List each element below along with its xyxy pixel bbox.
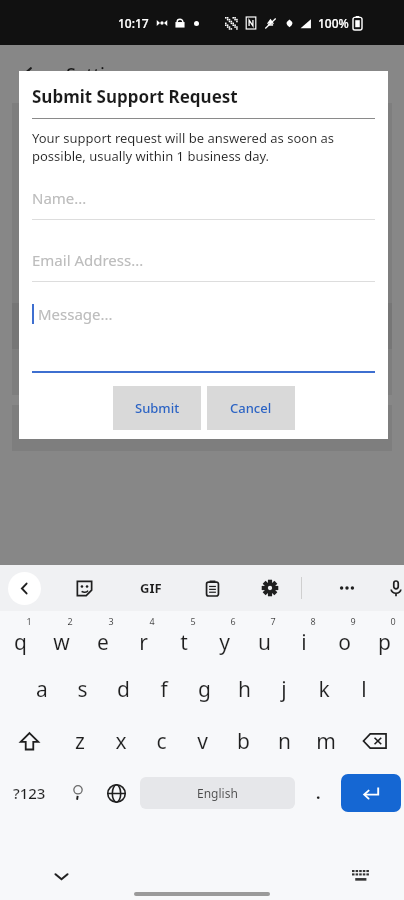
- staticText: 100%: [318, 15, 349, 31]
- staticText: b: [237, 727, 250, 756]
- button[interactable]: s: [62, 663, 103, 715]
- staticText: m: [316, 727, 336, 756]
- staticText: Settings: [66, 62, 137, 87]
- staticText: u: [258, 628, 271, 657]
- button[interactable]: Name...: [32, 188, 375, 220]
- staticText: Device Manufacturer: [26, 419, 154, 437]
- button[interactable]: More options: [330, 571, 364, 605]
- staticText: GIF: [140, 579, 162, 597]
- staticText: Submit Support Request: [32, 85, 238, 108]
- staticText: x: [115, 727, 127, 756]
- staticText: p: [378, 628, 391, 657]
- button[interactable]: GIF: [131, 571, 171, 605]
- button[interactable]: Enter: [341, 774, 401, 812]
- button[interactable]: d: [103, 663, 144, 715]
- button[interactable]: Message...: [32, 304, 375, 324]
- staticText: A: [26, 178, 35, 197]
- button[interactable]: 9: [324, 611, 364, 663]
- staticText: d: [117, 675, 130, 704]
- staticText: Submit: [135, 399, 180, 417]
- button[interactable]: Clipboard: [195, 571, 229, 605]
- staticText: k: [318, 675, 330, 704]
- button[interactable]: 6: [204, 611, 244, 663]
- button[interactable]: Submit: [113, 386, 201, 430]
- staticText: 8: [310, 615, 316, 627]
- staticText: 9: [350, 615, 356, 627]
- staticText: l: [361, 675, 367, 704]
- staticText: 7: [270, 615, 276, 627]
- button[interactable]: Hide keyboard: [44, 859, 78, 893]
- button[interactable]: Emoji and comma: [58, 767, 97, 819]
- staticText: z: [75, 727, 85, 756]
- button[interactable]: Stickers: [67, 571, 101, 605]
- button[interactable]: a: [21, 663, 62, 715]
- button[interactable]: h: [224, 663, 264, 715]
- staticText: s: [77, 675, 88, 704]
- button[interactable]: ?123: [0, 767, 58, 819]
- staticText: q: [14, 628, 27, 657]
- staticText: h: [238, 675, 251, 704]
- button[interactable]: 3: [82, 611, 123, 663]
- staticText: S: [26, 362, 34, 381]
- staticText: 6: [230, 615, 236, 627]
- staticText: 10:17: [118, 15, 149, 31]
- button[interactable]: 8: [284, 611, 324, 663]
- button[interactable]: c: [141, 715, 182, 767]
- button[interactable]: English: [140, 777, 295, 809]
- button[interactable]: n: [264, 715, 305, 767]
- button[interactable]: Close toolbar: [8, 572, 41, 605]
- button[interactable]: k: [304, 663, 344, 715]
- button[interactable]: 7: [244, 611, 284, 663]
- button[interactable]: g: [184, 663, 224, 715]
- button[interactable]: Device Manufacturer: [12, 405, 392, 451]
- staticText: .: [316, 782, 321, 804]
- button[interactable]: Cancel: [207, 386, 295, 430]
- button[interactable]: v: [182, 715, 223, 767]
- staticText: v: [197, 727, 208, 756]
- button[interactable]: Voice input: [388, 571, 404, 605]
- staticText: w: [53, 628, 70, 657]
- button[interactable]: 0: [364, 611, 404, 663]
- button[interactable]: z: [59, 715, 100, 767]
- button[interactable]: Change language: [97, 767, 136, 819]
- button[interactable]: l: [344, 663, 384, 715]
- button[interactable]: Back: [12, 54, 52, 94]
- staticText: i: [301, 628, 307, 657]
- button[interactable]: Email Address...: [32, 250, 375, 282]
- staticText: 4: [149, 615, 155, 627]
- button[interactable]: Switch keyboard: [344, 859, 378, 893]
- button[interactable]: Shift: [0, 715, 59, 767]
- staticText: 3: [108, 615, 114, 627]
- staticText: c: [156, 727, 167, 756]
- button[interactable]: b: [223, 715, 264, 767]
- button[interactable]: x: [100, 715, 141, 767]
- staticText: 0: [390, 615, 396, 627]
- button[interactable]: 5: [164, 611, 204, 663]
- button[interactable]: 1: [0, 611, 41, 663]
- button[interactable]: .: [299, 767, 338, 819]
- staticText: Your support request will be answered as…: [32, 129, 375, 165]
- staticText: t: [180, 628, 188, 657]
- staticText: 2: [67, 615, 73, 627]
- staticText: Email Address...: [32, 250, 144, 270]
- staticText: a: [36, 675, 48, 704]
- staticText: j: [281, 675, 287, 704]
- staticText: g: [198, 675, 211, 704]
- staticText: o: [338, 628, 351, 657]
- button[interactable]: j: [264, 663, 304, 715]
- staticText: English: [197, 785, 238, 801]
- staticText: n: [278, 727, 291, 756]
- staticText: Name...: [32, 188, 87, 208]
- button[interactable]: Backspace: [346, 715, 404, 767]
- button[interactable]: Settings: [253, 571, 287, 605]
- staticText: Message...: [38, 304, 113, 324]
- button[interactable]: 2: [41, 611, 82, 663]
- staticText: e: [97, 628, 109, 657]
- button[interactable]: m: [305, 715, 346, 767]
- button[interactable]: f: [144, 663, 184, 715]
- button[interactable]: 4: [123, 611, 164, 663]
- staticText: 1: [26, 615, 32, 627]
- staticText: 5: [190, 615, 196, 627]
- staticText: N: [26, 117, 37, 136]
